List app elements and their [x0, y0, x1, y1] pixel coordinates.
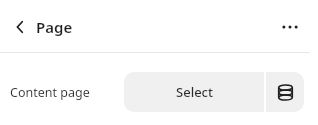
- staticText: Page: [36, 17, 73, 37]
- staticText: Select: [176, 83, 213, 101]
- staticText: Content page: [10, 84, 90, 101]
- button[interactable]: Database: [266, 72, 304, 112]
- button[interactable]: Back: [5, 12, 35, 42]
- button[interactable]: More options: [276, 13, 304, 41]
- button[interactable]: Select: [124, 72, 264, 112]
